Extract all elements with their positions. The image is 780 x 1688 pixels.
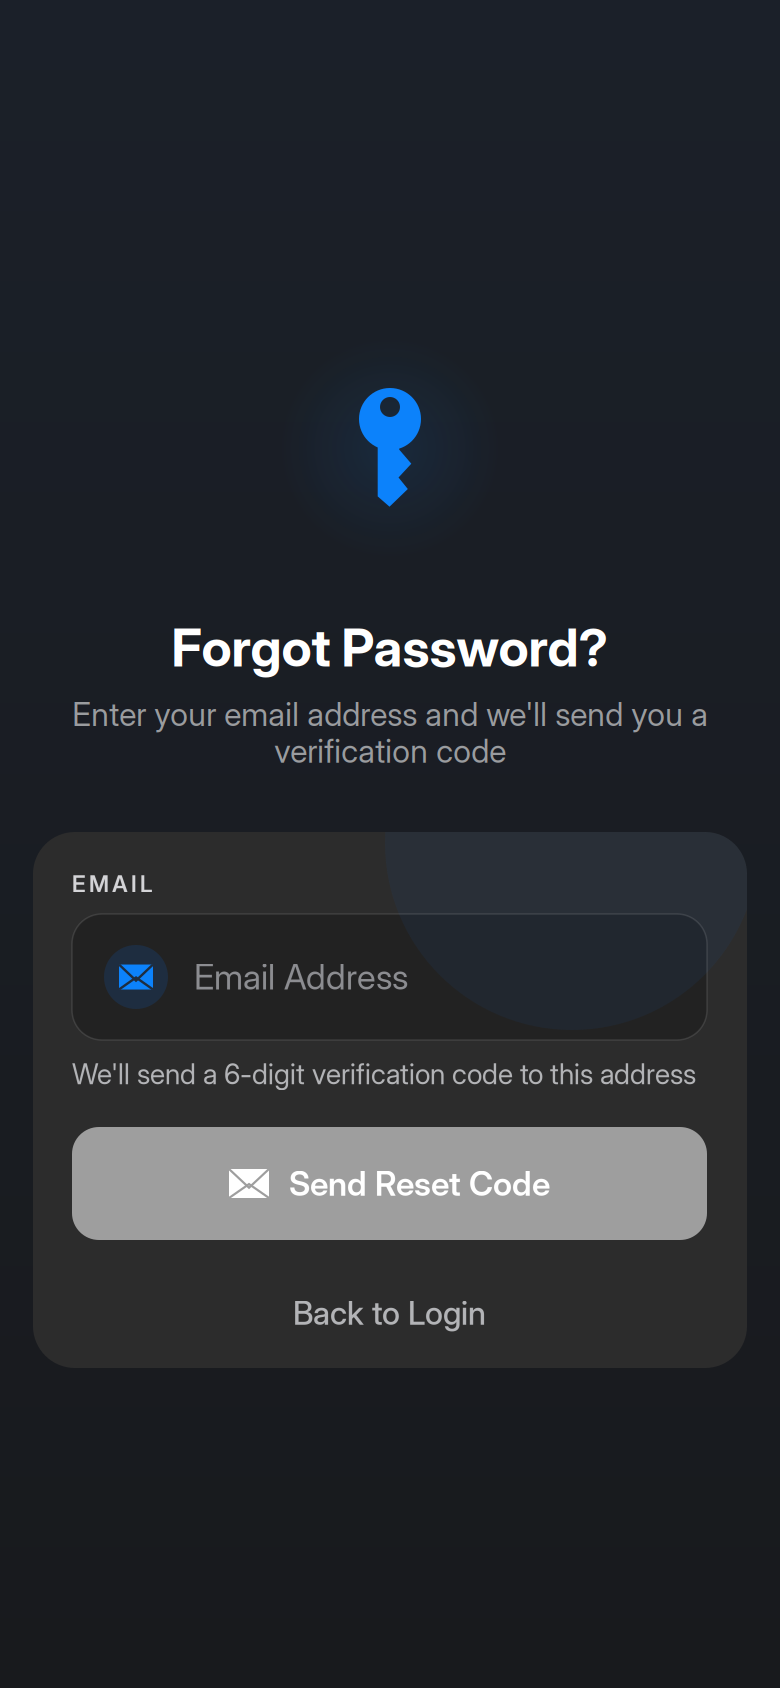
staticText: Enter your email address and we'll send … — [72, 695, 708, 770]
staticText: Back to Login — [293, 1294, 486, 1332]
staticText: Send Reset Code — [289, 1163, 550, 1204]
button[interactable]: Back to Login — [72, 1278, 707, 1348]
staticText: We'll send a 6-digit verification code t… — [72, 1057, 696, 1091]
staticText: Email Address — [194, 956, 408, 998]
button[interactable]: Send Reset Code — [72, 1127, 707, 1240]
staticText: Forgot Password? — [171, 616, 608, 679]
staticText: E M A I L — [72, 870, 152, 898]
